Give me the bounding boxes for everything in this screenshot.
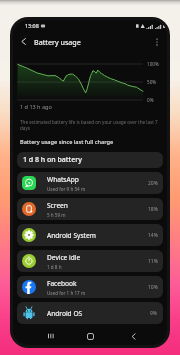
staticText: 10% bbox=[148, 284, 158, 291]
staticText: 1 d 8 h on battery bbox=[23, 155, 82, 165]
staticText: Android System bbox=[47, 231, 96, 240]
staticText: 1 d 8 h bbox=[47, 264, 62, 270]
button[interactable]: Recent apps bbox=[41, 326, 61, 345]
button[interactable]: Device idle bbox=[17, 250, 163, 272]
button[interactable]: Screen bbox=[17, 198, 163, 220]
staticText: 1 d 13 h ago bbox=[20, 103, 52, 110]
staticText: 11% bbox=[148, 258, 158, 265]
staticText: Screen bbox=[47, 201, 68, 210]
staticText: 18% bbox=[148, 206, 158, 213]
button[interactable]: Facebook bbox=[17, 276, 163, 298]
staticText: 50% bbox=[147, 79, 157, 85]
staticText: Battery usage bbox=[34, 37, 81, 47]
staticText: 0% bbox=[147, 97, 154, 103]
staticText: 100% bbox=[147, 61, 159, 67]
staticText: Battery usage since last full charge bbox=[20, 138, 114, 146]
button[interactable]: Android System bbox=[17, 224, 163, 246]
button[interactable]: Back bbox=[123, 326, 143, 345]
staticText: 20% bbox=[148, 180, 158, 187]
button[interactable]: Android OS bbox=[17, 302, 163, 324]
button[interactable]: More options bbox=[149, 34, 164, 49]
button[interactable]: Navigate up bbox=[16, 34, 31, 49]
staticText: Used for 9 h 54 m bbox=[47, 186, 86, 192]
button[interactable]: 1 d 8 h on battery bbox=[17, 152, 163, 168]
staticText: 9% bbox=[150, 310, 158, 317]
staticText: 14% bbox=[148, 232, 158, 239]
staticText: Facebook bbox=[47, 279, 77, 288]
staticText: 13:08 bbox=[25, 22, 39, 29]
button[interactable]: Home bbox=[80, 326, 100, 345]
staticText: WhatsApp bbox=[47, 175, 79, 184]
button[interactable]: WhatsApp bbox=[17, 172, 163, 194]
staticText: Device idle bbox=[47, 253, 81, 262]
staticText: Android OS bbox=[47, 309, 83, 318]
staticText: 5 h 59 m bbox=[47, 212, 66, 218]
staticText: Used for 1 h 17 m bbox=[47, 290, 86, 296]
staticText: The estimated battery life is based on y… bbox=[20, 119, 159, 131]
